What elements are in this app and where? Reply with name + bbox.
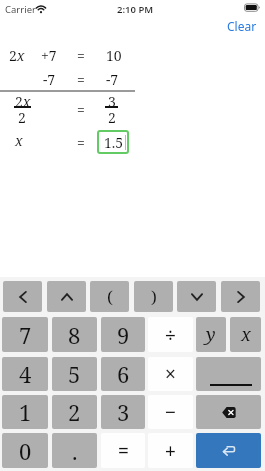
- staticText: +: [165, 438, 176, 464]
- staticText: 1: [19, 397, 32, 427]
- button[interactable]: [196, 395, 261, 429]
- button[interactable]: 9: [101, 317, 145, 352]
- button[interactable]: y: [196, 317, 226, 352]
- staticText: 2x: [15, 92, 31, 111]
- button[interactable]: −: [148, 395, 193, 429]
- staticText: 2x: [9, 46, 25, 65]
- button[interactable]: 8: [52, 317, 97, 352]
- staticText: 9: [117, 320, 130, 350]
- button[interactable]: [221, 281, 260, 312]
- staticText: 2: [68, 397, 81, 427]
- button[interactable]: (: [90, 281, 129, 312]
- button[interactable]: +: [148, 433, 193, 468]
- staticText: ): [151, 285, 157, 308]
- staticText: 7: [19, 320, 32, 350]
- staticText: 3: [117, 397, 130, 427]
- button[interactable]: 0: [2, 433, 48, 468]
- button[interactable]: 2: [52, 395, 97, 429]
- button[interactable]: 1: [2, 395, 48, 429]
- staticText: 1.5: [104, 133, 124, 152]
- staticText: Carrier: [5, 3, 36, 16]
- staticText: =: [77, 100, 85, 119]
- button[interactable]: 1.5: [97, 130, 129, 154]
- button[interactable]: 3: [101, 395, 145, 429]
- button[interactable]: [196, 433, 261, 468]
- button[interactable]: .: [52, 433, 97, 468]
- staticText: x: [15, 131, 23, 150]
- button[interactable]: [3, 281, 42, 312]
- button[interactable]: ): [134, 281, 173, 312]
- staticText: 8: [68, 320, 81, 350]
- staticText: =: [77, 133, 85, 152]
- staticText: 3: [108, 92, 116, 111]
- staticText: y: [206, 322, 216, 347]
- staticText: 0: [19, 436, 32, 466]
- staticText: ×: [165, 361, 176, 387]
- staticText: 2:10 PM: [117, 3, 154, 16]
- button[interactable]: x: [230, 317, 261, 352]
- button[interactable]: ÷: [148, 317, 193, 352]
- staticText: =: [77, 46, 85, 65]
- staticText: -7: [43, 70, 56, 89]
- staticText: (: [107, 285, 113, 308]
- staticText: 4: [19, 359, 32, 389]
- staticText: ÷: [165, 322, 176, 348]
- staticText: 2: [18, 108, 26, 127]
- staticText: .: [72, 436, 78, 466]
- button[interactable]: =: [101, 433, 145, 468]
- staticText: -7: [106, 70, 119, 89]
- staticText: +7: [41, 46, 57, 65]
- staticText: 10: [106, 46, 122, 65]
- button[interactable]: [177, 281, 216, 312]
- button[interactable]: 7: [2, 317, 48, 352]
- staticText: 5: [68, 359, 81, 389]
- staticText: =: [118, 438, 129, 464]
- staticText: 6: [117, 359, 130, 389]
- button[interactable]: [196, 357, 261, 391]
- button[interactable]: 4: [2, 357, 48, 391]
- staticText: x: [241, 322, 251, 347]
- staticText: −: [165, 399, 176, 425]
- button[interactable]: 5: [52, 357, 97, 391]
- button[interactable]: 6: [101, 357, 145, 391]
- staticText: 2: [108, 108, 116, 127]
- staticText: =: [77, 70, 85, 89]
- staticText: Clear: [227, 18, 257, 34]
- button[interactable]: Clear: [221, 15, 263, 37]
- button[interactable]: [47, 281, 86, 312]
- button[interactable]: ×: [148, 357, 193, 391]
